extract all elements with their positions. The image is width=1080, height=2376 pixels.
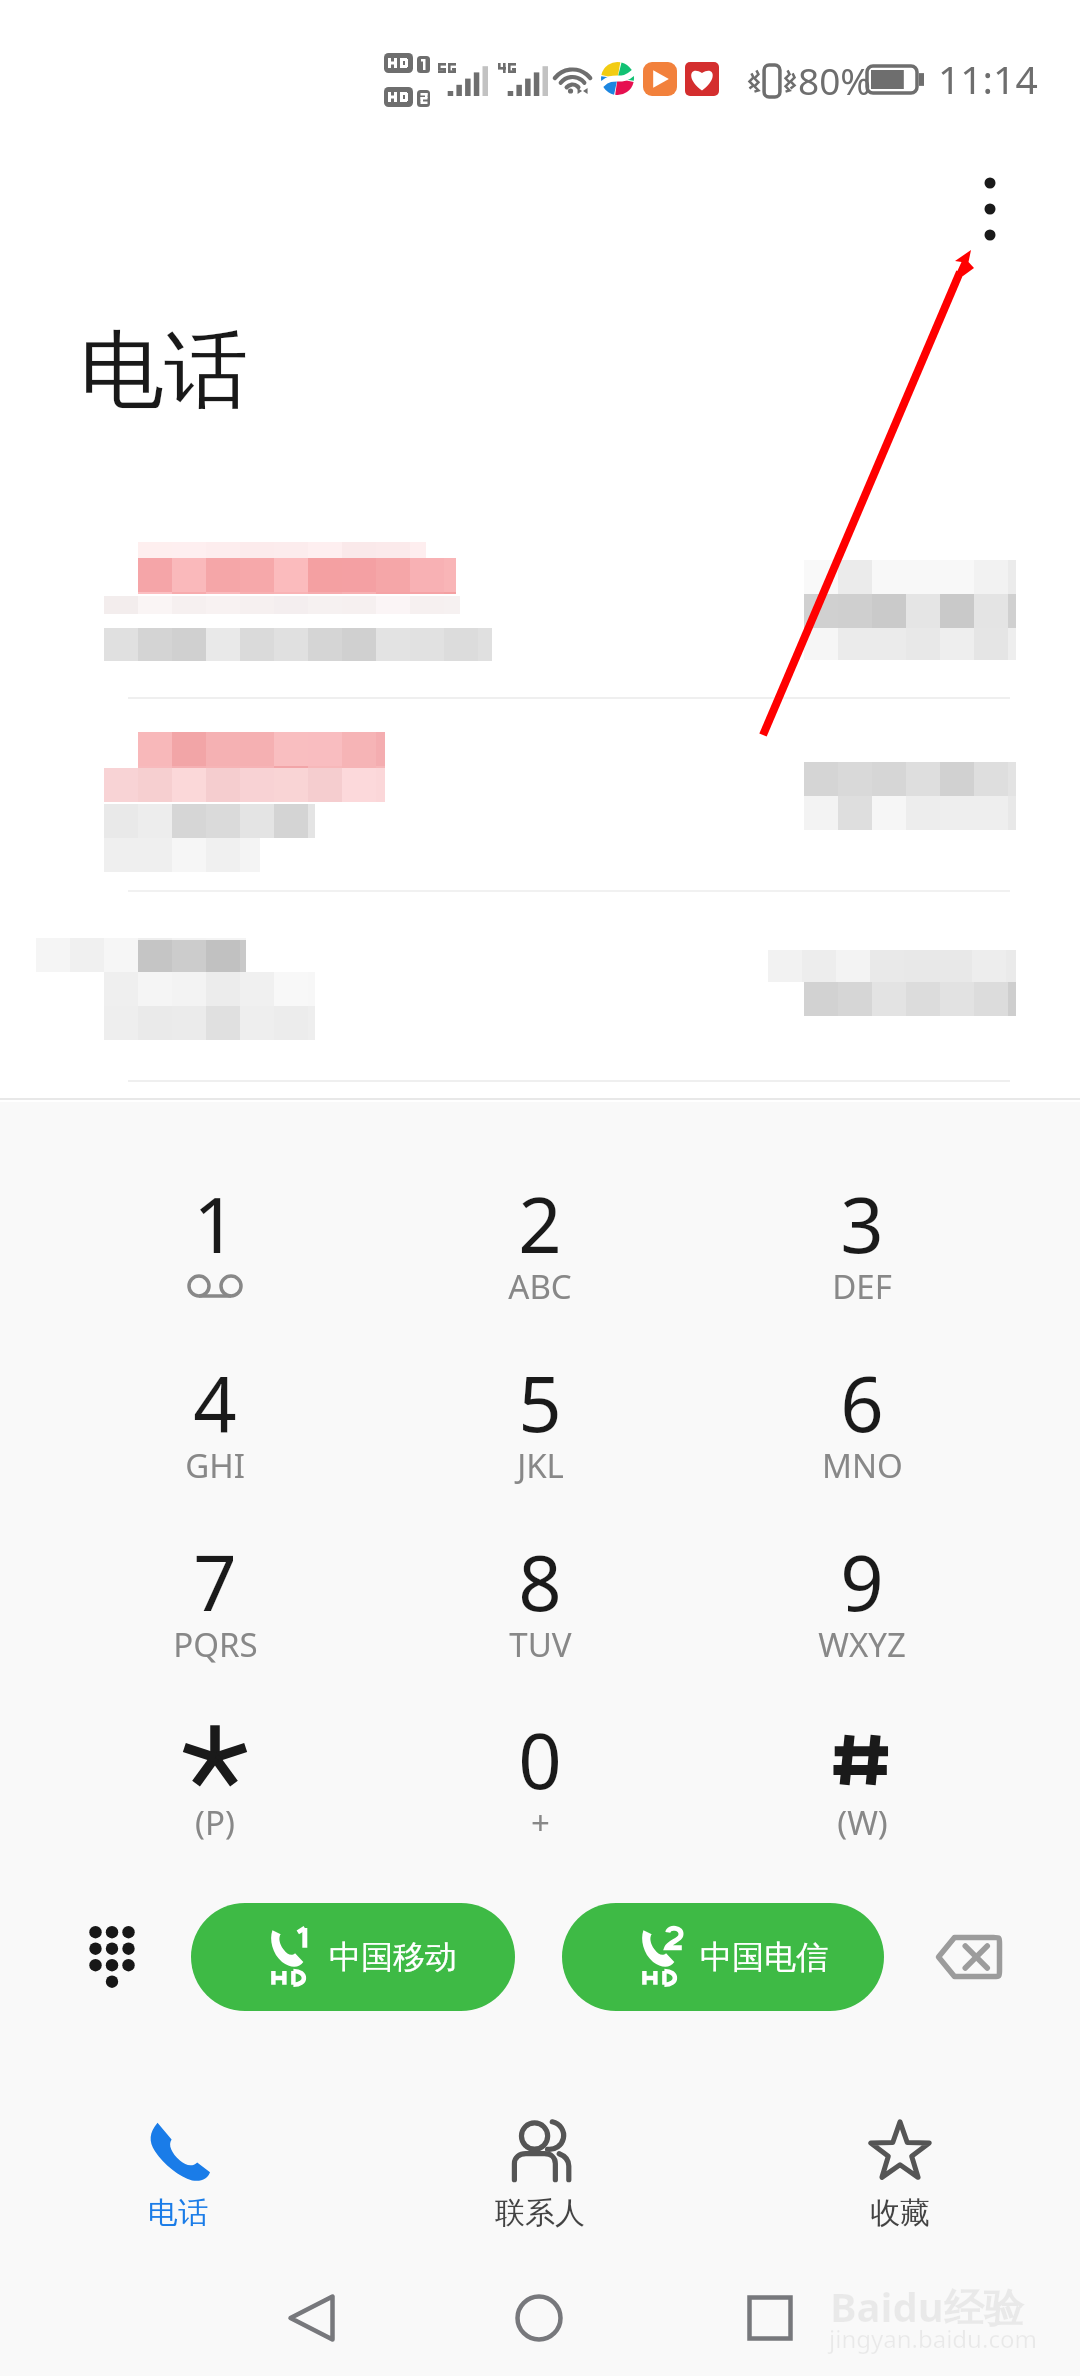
button[interactable]: 0 [390,1705,690,1875]
button[interactable]: 中国移动 [191,1903,515,2011]
staticText: (W) [837,1800,888,1845]
button[interactable]: 1 [65,1169,365,1339]
button[interactable]: Home [478,2268,600,2368]
button[interactable]: More options [940,150,1040,270]
staticText: 7 [193,1530,237,1634]
staticText: 中国电信 [700,1937,828,1977]
button[interactable]: (W) [712,1705,1012,1875]
staticText: WXYZ [818,1622,906,1667]
staticText: PQRS [173,1622,258,1667]
staticText: 9 [840,1530,884,1634]
button[interactable]: 收藏 [780,2104,1020,2269]
button[interactable]: 7 [65,1527,365,1697]
staticText: JKL [517,1443,564,1488]
staticText: 4 [193,1351,237,1455]
button[interactable]: 中国电信 [562,1903,884,2011]
staticText: 6 [840,1351,884,1455]
button[interactable]: (P) [65,1705,365,1875]
button[interactable]: Back [250,2268,372,2368]
staticText: ABC [508,1264,572,1309]
staticText: 8 [518,1530,562,1634]
button[interactable]: 3 [712,1169,1012,1339]
button[interactable]: Keypad [52,1897,172,2017]
staticText: 80% [798,55,872,105]
staticText: 中国移动 [329,1937,457,1977]
button[interactable]: 电话 [58,2104,298,2269]
button[interactable]: 2 [390,1169,690,1339]
staticText: 收藏 [870,2194,930,2232]
staticText: 电话 [80,318,248,424]
staticText: jingyan.baidu.com [829,2322,1037,2355]
staticText: (P) [195,1800,235,1845]
staticText: 11:14 [938,52,1038,105]
staticText: MNO [822,1443,903,1488]
button[interactable]: 8 [390,1527,690,1697]
staticText: 电话 [148,2194,208,2232]
button[interactable]: 联系人 [420,2104,660,2269]
staticText: + [531,1800,550,1845]
staticText: 0 [518,1708,562,1812]
staticText: 3 [840,1172,884,1276]
staticText: Baidu经验 [830,2279,1024,2334]
staticText: 联系人 [495,2194,585,2232]
staticText: 2 [518,1172,562,1276]
staticText: TUV [509,1622,572,1667]
button[interactable]: Recents [709,2268,831,2368]
staticText: 1 [193,1172,237,1276]
staticText: GHI [185,1443,245,1488]
button[interactable]: Backspace [909,1897,1029,2017]
button[interactable]: 5 [390,1348,690,1518]
button[interactable]: 6 [712,1348,1012,1518]
staticText: DEF [832,1264,892,1309]
button[interactable]: 4 [65,1348,365,1518]
staticText: 5 [518,1351,562,1455]
button[interactable]: 9 [712,1527,1012,1697]
